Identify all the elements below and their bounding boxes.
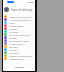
staticText: Sound & vibration — [9, 33, 31, 36]
staticText: Apps — [9, 21, 15, 24]
button[interactable]: Network & internet — [3, 15, 35, 18]
staticText: Passwords & accounts — [9, 57, 35, 60]
button[interactable]: Notifications — [3, 24, 35, 27]
staticText: Display — [9, 36, 18, 39]
staticText: Safety & emergency — [9, 54, 33, 57]
staticText: Privacy — [9, 48, 18, 51]
button[interactable]: Battery — [3, 27, 35, 30]
staticText: Battery — [9, 27, 18, 30]
button[interactable]: Privacy — [3, 48, 35, 51]
button[interactable]: Search settings — [3, 4, 35, 15]
staticText: Connected devices — [9, 18, 31, 21]
button[interactable]: Connected devices — [3, 18, 35, 21]
button[interactable]: Security — [3, 45, 35, 48]
button[interactable]: Safety & emergency — [3, 54, 35, 57]
staticText: Network & internet — [9, 15, 32, 18]
button[interactable]: Apps — [3, 21, 35, 24]
button[interactable]: Wallpaper & style — [3, 39, 35, 42]
button[interactable]: Sound & vibration — [3, 33, 35, 36]
button[interactable]: Passwords & accounts — [3, 57, 35, 60]
staticText: Search settings — [11, 8, 33, 12]
staticText: Accessibility — [9, 42, 24, 45]
button[interactable]: Display — [3, 36, 35, 39]
button[interactable]: Location — [3, 51, 35, 54]
staticText: Wallpaper & style — [9, 39, 30, 42]
staticText: Storage — [9, 30, 19, 33]
button[interactable]: Accessibility — [3, 42, 35, 45]
staticText: Notifications — [9, 24, 24, 27]
staticText: Security — [9, 45, 19, 48]
button[interactable]: Storage — [3, 30, 35, 33]
staticText: Location — [9, 51, 20, 54]
